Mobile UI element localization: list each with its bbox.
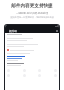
button[interactable]: Quick action: [54, 69, 57, 72]
button[interactable]: Quick action: [7, 69, 10, 72]
staticText: 邮件内容更支持快捷: [0, 3, 64, 9]
button[interactable]: Quick action: [38, 74, 41, 77]
button[interactable]: Quick action: [54, 74, 57, 77]
button[interactable]: [5, 49, 59, 51]
button[interactable]: Quick action: [23, 69, 26, 72]
staticText: 更快处理每一封重要邮件，随时随地保持高效: [0, 16, 64, 19]
button[interactable]: Quick action: [23, 74, 26, 77]
staticText: 一键回复·标记·归档·稍后处理: [0, 11, 64, 14]
staticText: 收件箱: [9, 29, 17, 32]
button[interactable]: Quick action: [38, 69, 41, 72]
button[interactable]: Quick action: [7, 74, 10, 77]
